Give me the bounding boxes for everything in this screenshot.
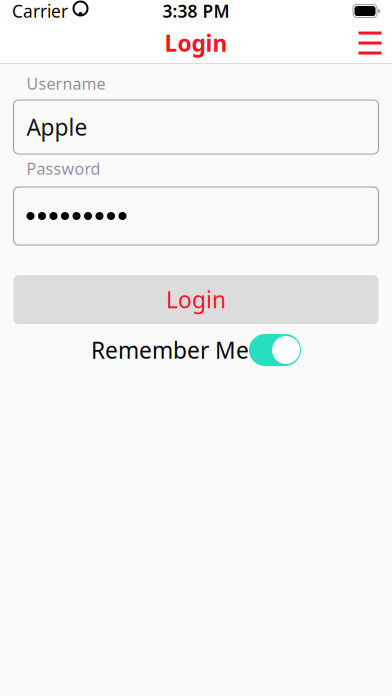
button[interactable]: Login <box>13 275 378 324</box>
staticText: Login <box>166 284 226 314</box>
staticText: Username <box>26 73 105 94</box>
staticText: Carrier <box>12 0 68 22</box>
staticText: 3:38 PM <box>162 0 229 22</box>
staticText: Password <box>26 158 100 179</box>
button[interactable]: Remember Me <box>249 334 301 366</box>
staticText: Login <box>164 28 227 58</box>
button[interactable]: Menu <box>348 22 392 64</box>
staticText: Remember Me <box>91 335 249 365</box>
staticText: Apple <box>26 112 87 142</box>
